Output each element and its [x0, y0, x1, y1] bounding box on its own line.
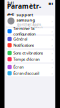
button[interactable]: Notifications	[6, 42, 54, 48]
button[interactable]: Écran d'accueil	[6, 70, 54, 76]
staticText: Identifiant Apple, iCloud, Contenus	[16, 23, 42, 30]
staticText: Général	[13, 36, 27, 42]
staticText: ▮▮ ▮	[48, 2, 52, 5]
staticText: Écran d'accueil	[13, 70, 39, 76]
button[interactable]: support samsung	[6, 15, 54, 26]
staticText: Écran	[13, 64, 23, 70]
button[interactable]: Sons et vibrations	[6, 50, 54, 56]
staticText: Sons et vibrations	[13, 50, 43, 56]
staticText: support samsung	[16, 12, 35, 22]
staticText: Temps d'écran	[13, 56, 39, 62]
button[interactable]: Général	[6, 36, 54, 42]
button[interactable]: Terminer la configuration	[6, 28, 54, 34]
staticText: Notifications	[13, 42, 34, 48]
staticText: 9:41	[7, 2, 14, 5]
staticText: Paramètres	[7, 2, 41, 19]
staticText: Terminer la configuration	[13, 26, 35, 36]
button[interactable]: Écran	[6, 64, 54, 70]
button[interactable]: Temps d'écran	[6, 56, 54, 62]
